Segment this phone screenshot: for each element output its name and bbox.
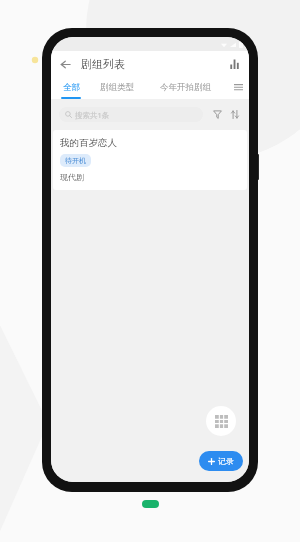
staticText: 现代剧 [60, 172, 84, 182]
button[interactable]: 记录 [199, 451, 243, 471]
staticText: 我的百岁恋人 [60, 137, 117, 149]
staticText: 剧组类型 [100, 82, 134, 93]
button[interactable]: Sort [227, 106, 243, 122]
staticText: 搜索共1条 [75, 110, 110, 120]
staticText: 剧组列表 [81, 57, 125, 71]
button[interactable]: 搜索共1条 [59, 107, 203, 122]
button[interactable]: 剧组类型 [91, 77, 143, 97]
button[interactable]: 我的百岁恋人 [53, 130, 247, 190]
button[interactable]: Statistics [226, 55, 244, 73]
staticText: 待开机 [65, 156, 86, 165]
button[interactable]: Grid view [206, 406, 236, 436]
button[interactable]: 全部 [51, 77, 91, 97]
button[interactable]: 今年开拍剧组 [143, 77, 227, 97]
button[interactable]: More tabs [227, 77, 249, 97]
button[interactable]: Filter [209, 106, 225, 122]
button[interactable]: Back [55, 54, 75, 74]
staticText: 全部 [63, 82, 80, 93]
staticText: 记录 [218, 456, 234, 466]
staticText: 今年开拍剧组 [160, 82, 211, 93]
